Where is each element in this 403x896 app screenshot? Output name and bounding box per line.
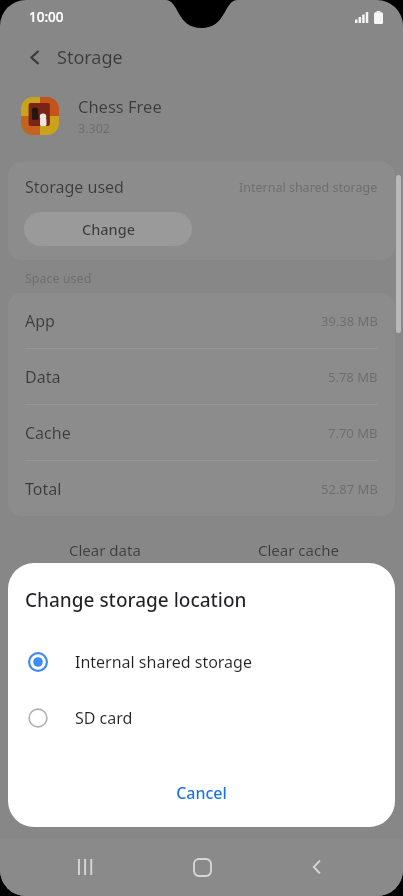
staticText: Cancel — [176, 782, 227, 804]
staticText: 3.302 — [78, 120, 110, 137]
button[interactable]: Back — [0, 34, 403, 80]
button[interactable]: Data — [8, 349, 395, 405]
staticText: Chess Free — [78, 95, 162, 117]
button[interactable]: SD card — [8, 690, 395, 746]
staticText: SD card — [75, 707, 133, 729]
button[interactable]: Cache — [8, 405, 395, 461]
button[interactable]: Recents — [57, 838, 115, 896]
button[interactable]: Chess Free — [0, 80, 403, 152]
staticText: 52.87 MB — [321, 480, 378, 498]
staticText: Change storage location — [25, 587, 247, 613]
button[interactable]: Total — [8, 461, 395, 516]
staticText: Clear cache — [258, 540, 339, 560]
staticText: Storage — [57, 45, 123, 70]
button[interactable]: Clear data — [8, 530, 201, 570]
staticText: Internal shared storage — [239, 179, 378, 196]
button[interactable]: App — [8, 293, 395, 349]
staticText: Space used — [25, 270, 92, 287]
staticText: Storage used — [25, 176, 124, 198]
button[interactable]: Clear cache — [201, 530, 395, 570]
button[interactable]: Cancel — [158, 774, 245, 812]
staticText: Change — [82, 219, 135, 239]
staticText: 7.70 MB — [328, 424, 378, 442]
button[interactable]: Back — [22, 44, 48, 70]
staticText: Cache — [25, 422, 71, 444]
staticText: Internal shared storage — [75, 651, 252, 673]
button[interactable]: Change — [24, 212, 192, 246]
button[interactable]: Internal shared storage — [8, 634, 395, 690]
staticText: Total — [25, 478, 62, 500]
staticText: 10:00 — [29, 8, 64, 26]
staticText: Data — [25, 366, 61, 388]
staticText: 5.78 MB — [328, 368, 378, 386]
staticText: 39.38 MB — [321, 312, 378, 330]
staticText: App — [25, 310, 55, 332]
button[interactable]: Back — [288, 838, 346, 896]
staticText: Clear data — [69, 540, 141, 560]
button[interactable]: Home — [173, 838, 231, 896]
